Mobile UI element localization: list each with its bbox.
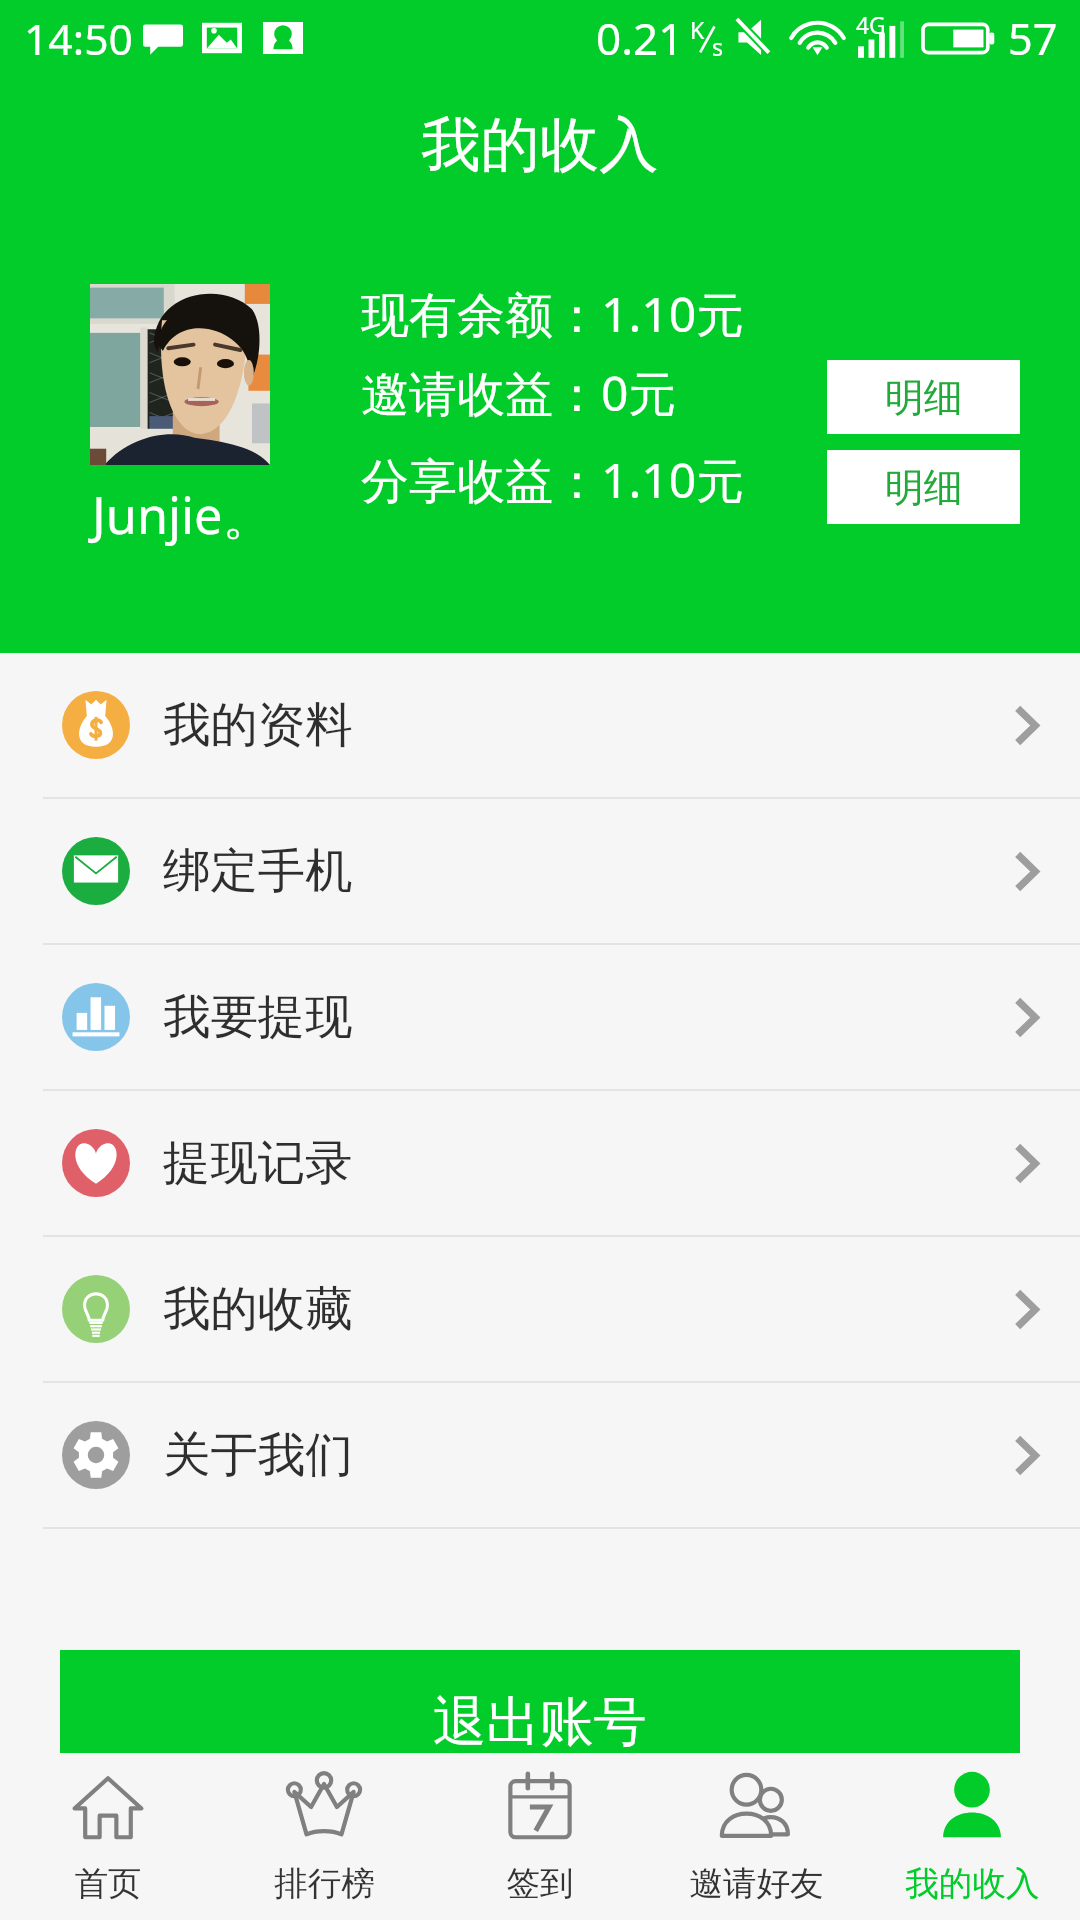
button[interactable]: 邀请好友 — [648, 1753, 864, 1920]
button[interactable]: Profile photo — [90, 284, 270, 465]
staticText: 邀请收益：0元 — [361, 360, 677, 426]
button[interactable]: 提现记录 — [0, 1091, 1080, 1237]
staticText: 排行榜 — [274, 1863, 375, 1905]
button[interactable]: 首页 — [0, 1753, 216, 1920]
staticText: 57 — [1008, 9, 1058, 68]
staticText: 明细 — [885, 463, 963, 512]
staticText: 签到 — [506, 1863, 574, 1905]
button[interactable]: 我的收入 — [864, 1753, 1080, 1920]
button[interactable]: 我的资料 — [0, 653, 1080, 799]
staticText: 现有余额：1.10元 — [361, 281, 745, 347]
button[interactable]: 我的收藏 — [0, 1237, 1080, 1383]
staticText: 4G — [856, 10, 886, 41]
staticText: 首页 — [74, 1863, 142, 1905]
staticText: 明细 — [885, 373, 963, 422]
staticText: 退出账号 — [433, 1689, 647, 1756]
button[interactable]: 签到 — [432, 1753, 648, 1920]
staticText: 我的收入 — [905, 1863, 1040, 1905]
staticText: K — [690, 14, 705, 45]
staticText: s — [712, 31, 724, 62]
button[interactable]: 退出账号 — [60, 1650, 1020, 1753]
staticText: 0.21 — [596, 8, 684, 68]
staticText: 绑定手机 — [163, 841, 353, 901]
button[interactable]: 明细 — [827, 450, 1020, 524]
button[interactable]: 明细 — [827, 360, 1020, 434]
staticText: 分享收益：1.10元 — [361, 447, 745, 513]
staticText: 14:50 — [24, 9, 133, 67]
button[interactable]: 关于我们 — [0, 1383, 1080, 1529]
staticText: 提现记录 — [163, 1133, 353, 1193]
button[interactable]: 我要提现 — [0, 945, 1080, 1091]
staticText: 我要提现 — [163, 987, 353, 1047]
button[interactable]: 排行榜 — [216, 1753, 432, 1920]
staticText: 我的资料 — [163, 695, 353, 755]
staticText: 我的收入 — [421, 108, 659, 183]
staticText: 关于我们 — [163, 1425, 353, 1485]
staticText: 邀请好友 — [689, 1863, 824, 1905]
staticText: Junjie。 — [92, 480, 273, 549]
button[interactable]: 绑定手机 — [0, 799, 1080, 945]
staticText: 我的收藏 — [163, 1279, 353, 1339]
